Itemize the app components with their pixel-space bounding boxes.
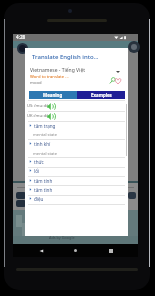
button[interactable]: US: (27, 101, 125, 110)
button[interactable]: tâm tính (27, 177, 125, 186)
staticText: thức (34, 159, 44, 165)
staticText: lối (34, 168, 40, 174)
button[interactable]: tâm tình (27, 186, 125, 195)
staticText: tính khí (34, 141, 51, 147)
other: Play pronunciation (47, 112, 56, 121)
staticText: Translate English into... (32, 53, 99, 61)
button[interactable]: Meaning (29, 91, 77, 99)
button[interactable]: Back (35, 244, 48, 257)
button[interactable]: Examples (77, 91, 125, 99)
staticText: 4:28 (16, 34, 26, 40)
button[interactable]: UK: (27, 111, 125, 120)
staticText: US: (27, 103, 34, 109)
staticText: điệu (34, 196, 44, 202)
staticText: mental state (33, 151, 58, 157)
staticText: tâm tính (34, 178, 53, 184)
staticText: /muːd/ (34, 113, 48, 119)
staticText: Vietnamese - Tiếng Việt (30, 67, 86, 74)
staticText: tâm trạng (34, 123, 56, 129)
button[interactable]: tính khí (27, 140, 125, 149)
staticText: mood (30, 80, 42, 86)
staticText: Meaning (43, 92, 63, 98)
button[interactable]: điệu (27, 195, 125, 204)
staticText: Examples (91, 92, 112, 98)
button[interactable]: Add to favourites (114, 77, 122, 85)
button[interactable]: tâm trạng (27, 122, 125, 131)
staticText: Ads by Google (49, 235, 75, 240)
button[interactable]: Home (69, 244, 82, 257)
staticText: mental state (33, 132, 58, 138)
button[interactable]: lối (27, 167, 125, 176)
staticText: /muːd/ (34, 103, 48, 109)
button[interactable]: Search (109, 77, 116, 84)
staticText: tâm tình (34, 187, 53, 193)
other: Play pronunciation (47, 102, 56, 111)
button[interactable]: thức (27, 158, 125, 167)
staticText: UK: (27, 113, 34, 119)
button[interactable]: Choose language (115, 69, 120, 74)
staticText: Word to translate ... (30, 74, 69, 80)
button[interactable]: Recent apps (104, 244, 117, 257)
